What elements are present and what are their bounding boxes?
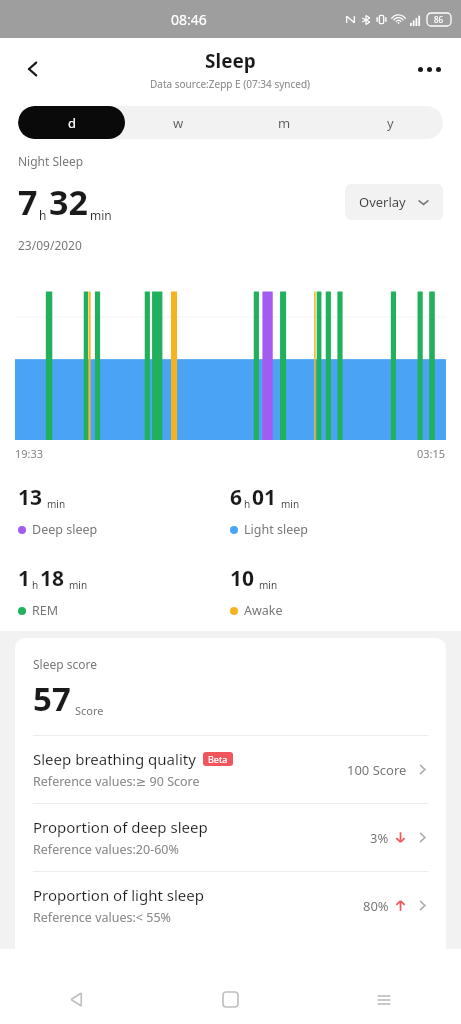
staticText: 01 [252, 483, 277, 512]
staticText: m [278, 114, 291, 132]
staticText: Night Sleep [18, 153, 84, 169]
staticText: min [90, 207, 112, 223]
staticText: Data source:Zepp E (07:34 synced) [150, 77, 311, 91]
staticText: 57 [33, 676, 71, 721]
staticText: Awake [244, 602, 283, 619]
staticText: Reference values:< 55% [33, 909, 171, 926]
staticText: 13 [18, 483, 43, 512]
button[interactable]: y [337, 106, 443, 139]
staticText: 80% [363, 897, 389, 915]
staticText: 08:46 [171, 10, 207, 29]
button[interactable]: Proportion of deep sleep [33, 804, 428, 871]
staticText: Proportion of deep sleep [33, 817, 208, 837]
staticText: w [173, 114, 184, 132]
staticText: h [244, 497, 251, 511]
staticText: 1 [18, 564, 31, 593]
staticText: Overlay [359, 193, 406, 211]
staticText: min [281, 497, 300, 511]
staticText: h [32, 578, 39, 592]
staticText: 32 [49, 179, 88, 225]
staticText: min [69, 578, 88, 592]
staticText: 23/09/2020 [18, 237, 82, 253]
staticText: Sleep score [33, 656, 97, 672]
staticText: Score [75, 703, 104, 718]
staticText: min [259, 578, 278, 592]
button[interactable]: Home [153, 975, 307, 1024]
button[interactable]: Sleep breathing quality [33, 736, 428, 803]
button[interactable]: Back [12, 48, 54, 90]
button[interactable]: m [231, 106, 337, 139]
staticText: Proportion of light sleep [33, 885, 204, 905]
staticText: d [68, 114, 76, 132]
staticText: 6 [230, 483, 243, 512]
staticText: REM [32, 602, 59, 619]
staticText: 100 Score [347, 761, 407, 779]
staticText: 86 [434, 14, 444, 25]
staticText: min [47, 497, 66, 511]
button[interactable]: More options [407, 47, 451, 91]
staticText: 18 [40, 564, 65, 593]
staticText: 19:33 [15, 446, 44, 461]
staticText: Beta [208, 753, 228, 765]
staticText: Reference values:20-60% [33, 841, 179, 858]
staticText: 03:15 [417, 446, 446, 461]
staticText: 3% [370, 829, 389, 847]
staticText: Light sleep [244, 521, 308, 538]
staticText: Reference values:≥ 90 Score [33, 773, 200, 790]
staticText: h [39, 207, 47, 223]
staticText: Deep sleep [32, 521, 98, 538]
staticText: 10 [230, 564, 255, 593]
button[interactable]: Proportion of light sleep [33, 872, 428, 939]
button[interactable]: d [18, 106, 125, 139]
button[interactable]: w [125, 106, 231, 139]
button[interactable]: Back [0, 975, 153, 1024]
staticText: Sleep [205, 48, 256, 74]
staticText: Sleep breathing quality [33, 749, 196, 769]
staticText: y [387, 114, 394, 132]
staticText: 7 [18, 179, 38, 225]
button[interactable]: Recent apps [307, 975, 461, 1024]
button[interactable]: Overlay [345, 184, 443, 220]
